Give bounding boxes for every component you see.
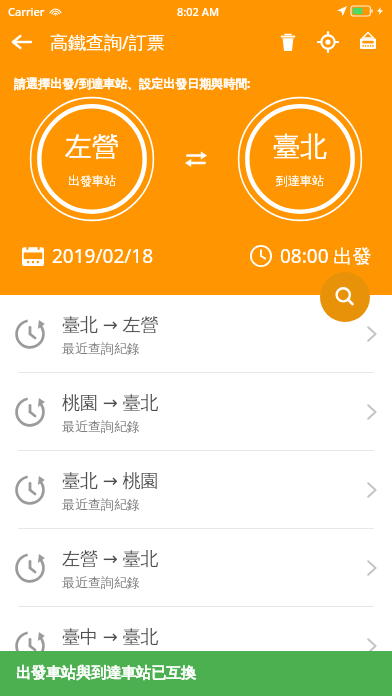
staticText: 桃園 → 臺北: [62, 390, 159, 415]
staticText: 臺北: [273, 130, 327, 164]
staticText: 2019/02/18: [52, 243, 154, 269]
button[interactable]: Hotel: [348, 22, 388, 62]
button[interactable]: Locate: [308, 22, 348, 62]
staticText: 臺中 → 臺北: [62, 624, 159, 649]
button[interactable]: 左營 → 臺北: [0, 529, 392, 606]
button[interactable]: 08:00 出發: [250, 243, 372, 269]
staticText: 最近查詢紀錄: [62, 418, 140, 434]
button[interactable]: 臺北 → 桃園: [0, 451, 392, 528]
button[interactable]: 2019/02/18: [22, 243, 154, 269]
staticText: 出發車站與到達車站已互換: [16, 664, 196, 683]
button[interactable]: 出發車站與到達車站已互換: [0, 651, 392, 696]
staticText: 最近查詢紀錄: [62, 574, 140, 590]
button[interactable]: 臺中 → 臺北: [0, 607, 392, 684]
staticText: 到達車站: [276, 173, 324, 188]
button[interactable]: Swap stations: [176, 139, 216, 179]
staticText: 臺北 → 桃園: [62, 468, 159, 493]
staticText: 左營 → 臺北: [62, 546, 159, 571]
staticText: 臺北 → 左營: [62, 312, 159, 337]
button[interactable]: Delete: [268, 22, 308, 62]
staticText: 高鐵查詢/訂票: [50, 30, 165, 55]
staticText: 出發車站: [68, 173, 116, 188]
staticText: Carrier: [8, 4, 45, 19]
staticText: 最近查詢紀錄: [62, 652, 140, 668]
button[interactable]: 左營: [30, 97, 154, 221]
button[interactable]: Back: [0, 22, 44, 62]
staticText: 最近查詢紀錄: [62, 340, 140, 356]
button[interactable]: Search: [320, 272, 370, 322]
staticText: 08:00 出發: [280, 243, 372, 269]
staticText: 8:02 AM: [177, 4, 220, 19]
button[interactable]: 桃園 → 臺北: [0, 373, 392, 450]
staticText: 請選擇出發/到達車站、設定出發日期與時間:: [14, 75, 251, 91]
staticText: 最近查詢紀錄: [62, 496, 140, 512]
button[interactable]: 臺北: [238, 97, 362, 221]
button[interactable]: 臺北 → 左營: [0, 295, 392, 372]
staticText: 左營: [65, 130, 119, 164]
